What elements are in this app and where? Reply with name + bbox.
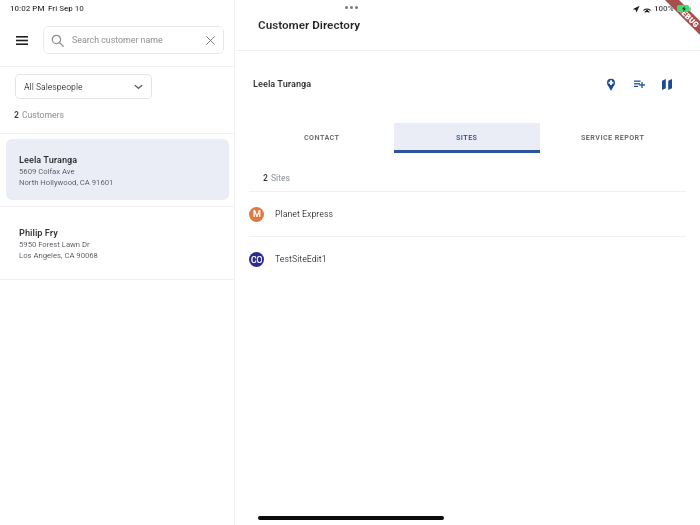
staticText: Search customer name xyxy=(72,35,205,45)
staticText: SERVICE REPORT xyxy=(581,133,645,141)
button[interactable]: Add to list xyxy=(625,70,653,98)
staticText: North Hollywood, CA 91601 xyxy=(19,178,114,187)
staticText: Leela Turanga xyxy=(253,78,312,89)
staticText: Fri Sep 10 xyxy=(48,4,84,13)
staticText: DEBUG xyxy=(676,5,700,30)
staticText: Los Angeles, CA 90068 xyxy=(19,251,98,260)
button[interactable]: CONTACT xyxy=(249,123,394,153)
staticText: 5609 Colfax Ave xyxy=(19,167,75,176)
staticText: Leela Turanga xyxy=(19,154,78,165)
button[interactable]: Menu xyxy=(9,28,34,53)
staticText: Sites xyxy=(271,173,290,183)
staticText: 10:02 PM xyxy=(10,4,45,13)
staticText: Customers xyxy=(22,110,64,120)
staticText: All Salespeople xyxy=(24,82,133,92)
staticText: 100% xyxy=(654,4,674,13)
staticText: Philip Fry xyxy=(19,227,58,238)
staticText: CO xyxy=(251,255,263,265)
button[interactable]: Philip Fry xyxy=(0,207,234,279)
button[interactable]: SERVICE REPORT xyxy=(540,123,686,153)
button[interactable]: Leela Turanga xyxy=(0,134,234,206)
staticText: 2 xyxy=(14,110,19,120)
staticText: 2 xyxy=(263,173,268,183)
staticText: M xyxy=(253,209,261,220)
staticText: CONTACT xyxy=(304,133,340,141)
button[interactable]: Add location xyxy=(597,70,625,98)
staticText: SITES xyxy=(456,133,478,141)
button[interactable]: M xyxy=(235,192,700,236)
button[interactable]: All Salespeople xyxy=(15,74,152,99)
button[interactable]: SITES xyxy=(394,123,540,153)
staticText: Planet Express xyxy=(275,209,334,219)
button[interactable]: CO xyxy=(235,237,700,281)
staticText: 5950 Forest Lawn Dr xyxy=(19,240,90,249)
button[interactable]: Search customer name xyxy=(43,26,224,54)
staticText: Customer Directory xyxy=(258,18,361,32)
button[interactable]: Map xyxy=(653,70,681,98)
staticText: TestSiteEdit1 xyxy=(275,254,327,264)
